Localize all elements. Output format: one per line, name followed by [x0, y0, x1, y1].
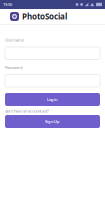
staticText: Login: [47, 97, 58, 102]
staticText: PhotoSocial: [22, 11, 67, 22]
button[interactable]: Login: [5, 93, 100, 106]
staticText: Username: [5, 37, 24, 43]
staticText: 19:56: [3, 2, 12, 7]
button[interactable]: SignUp: [5, 115, 100, 128]
staticText: Password: [5, 65, 22, 70]
staticText: don't have an account yet?: [5, 108, 49, 114]
staticText: SignUp: [45, 119, 60, 124]
